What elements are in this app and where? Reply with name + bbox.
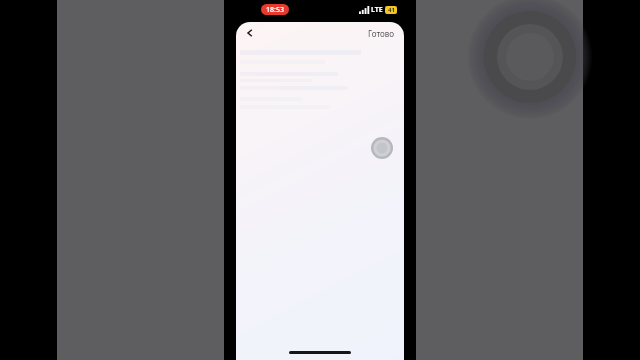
staticText: Готово <box>368 28 395 39</box>
staticText: 41 <box>388 6 395 14</box>
button[interactable]: Готово <box>365 26 398 41</box>
button[interactable]: Profile <box>371 137 393 159</box>
button[interactable]: Back <box>240 23 260 43</box>
staticText: LTE <box>371 5 383 15</box>
staticText: 18:53 <box>266 5 284 15</box>
